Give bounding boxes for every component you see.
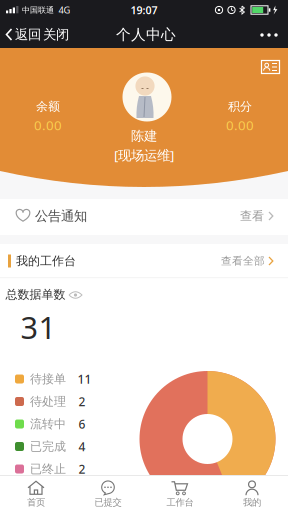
staticText: 我的工作台 xyxy=(16,254,76,268)
staticText: 已完成 xyxy=(30,439,66,454)
staticText: 总数据单数 xyxy=(5,287,65,302)
staticText: 首页 xyxy=(27,497,45,508)
button[interactable]: 我的工作台 xyxy=(0,244,288,278)
staticText: 6 xyxy=(78,416,85,432)
staticText: 31 xyxy=(20,307,56,347)
staticText: 个人中心 xyxy=(116,25,176,43)
staticText: 积分 xyxy=(228,99,252,114)
staticText: [现场运维] xyxy=(114,146,174,164)
staticText: 0.00 xyxy=(226,116,254,134)
staticText: 4 xyxy=(78,438,85,454)
staticText: 我的 xyxy=(243,497,261,508)
staticText: 查看全部 xyxy=(221,254,265,267)
button[interactable]: 隐藏数据 xyxy=(68,290,83,300)
staticText: 4G xyxy=(58,4,70,16)
staticText: 余额 xyxy=(36,99,60,114)
staticText: 已终止 xyxy=(30,462,66,476)
staticText: 陈建 xyxy=(131,128,157,144)
staticText: 中国联通 xyxy=(22,5,54,15)
staticText: 返回 xyxy=(15,26,41,43)
staticText: 0.00 xyxy=(34,116,62,134)
staticText: 查看 xyxy=(240,209,264,223)
staticText: 工作台 xyxy=(166,497,193,508)
staticText: 已提交 xyxy=(94,497,121,508)
button[interactable]: 名片 xyxy=(260,59,280,74)
staticText: 待接单 xyxy=(30,372,66,386)
button[interactable]: 首页 xyxy=(0,476,72,512)
button[interactable]: 我的 xyxy=(216,476,288,512)
button[interactable]: 已提交 xyxy=(72,476,144,512)
staticText: 流转中 xyxy=(30,417,66,431)
staticText: 19:07 xyxy=(130,3,157,17)
button[interactable]: 关闭 xyxy=(39,20,73,48)
button[interactable]: 更多 xyxy=(259,30,279,40)
staticText: 2 xyxy=(78,461,85,477)
button[interactable]: 返回 xyxy=(1,20,45,48)
staticText: 公告通知 xyxy=(35,208,87,224)
staticText: 关闭 xyxy=(43,26,69,43)
staticText: 待处理 xyxy=(30,394,66,409)
button[interactable]: 公告通知 xyxy=(0,199,288,235)
button[interactable]: 工作台 xyxy=(144,476,216,512)
staticText: 2 xyxy=(78,393,85,409)
staticText: 11 xyxy=(77,371,91,387)
